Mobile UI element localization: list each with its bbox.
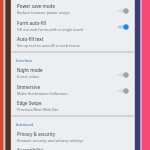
staticText: Privacy & security bbox=[17, 131, 56, 137]
button[interactable]: Switch off bbox=[117, 86, 129, 96]
staticText: Form auto-fill bbox=[17, 20, 47, 26]
staticText: Fill out web forms with a single touch bbox=[17, 27, 84, 32]
button[interactable]: Switch on bbox=[117, 22, 129, 32]
staticText: Reduce browser power usage bbox=[17, 10, 70, 15]
staticText: Accessibility bbox=[17, 147, 44, 150]
staticText: Interface bbox=[16, 58, 33, 63]
button[interactable]: Power save mode bbox=[12, 2, 134, 19]
staticText: Night mode bbox=[17, 67, 43, 73]
button[interactable]: Accessibility bbox=[12, 146, 134, 150]
staticText: Set up text to auto-fill in web forms bbox=[17, 43, 80, 48]
button[interactable]: Auto-fill text bbox=[12, 35, 134, 51]
staticText: Power save mode bbox=[17, 3, 55, 9]
staticText: Advanced bbox=[16, 122, 34, 127]
button[interactable]: Switch off bbox=[117, 6, 129, 16]
button[interactable]: Immersive bbox=[12, 83, 134, 99]
staticText: Invert colors bbox=[17, 74, 40, 79]
staticText: Auto-fill text bbox=[17, 36, 44, 42]
staticText: Previous/Next Web Site bbox=[17, 107, 59, 112]
staticText: Immersive bbox=[17, 84, 40, 90]
button[interactable]: Night mode bbox=[12, 66, 134, 83]
button[interactable]: Form auto-fill bbox=[12, 19, 134, 35]
staticText: Make the browser fullscreen bbox=[17, 91, 68, 96]
button[interactable]: Edge Swipe bbox=[12, 99, 134, 115]
button[interactable]: Privacy & security bbox=[12, 130, 134, 146]
button[interactable]: Switch off bbox=[117, 70, 129, 80]
staticText: Edge Swipe bbox=[17, 100, 42, 106]
staticText: Browser security and privacy settings bbox=[17, 138, 84, 143]
